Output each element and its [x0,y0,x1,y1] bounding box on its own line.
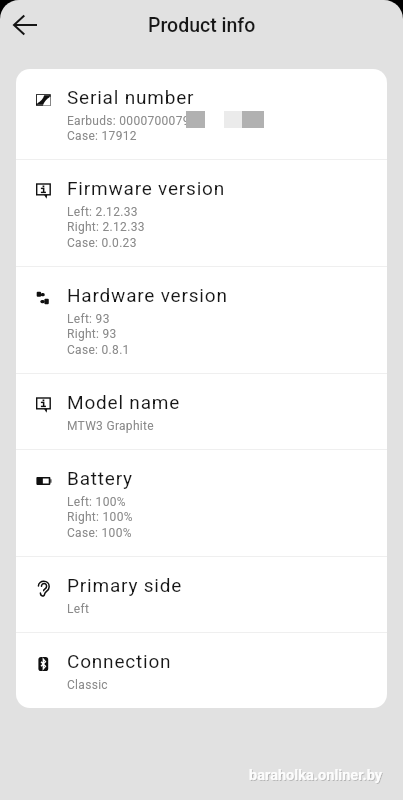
button[interactable]: Primary side [16,557,387,632]
button[interactable]: Model name [16,374,387,449]
staticText: Primary side [67,574,183,596]
button[interactable]: Back [4,3,48,47]
button[interactable]: Battery [16,450,387,556]
staticText: Classic [67,678,108,692]
button[interactable]: Firmware version [16,160,387,266]
staticText: Serial number [67,86,195,108]
staticText: Earbuds: 0000700079 Case: 17912 [67,114,190,143]
staticText: Left: 2.12.33 Right: 2.12.33 Case: 0.0.2… [67,205,145,250]
staticText: Hardware version [67,284,228,306]
staticText: Left [67,602,90,616]
staticText: baraholka.onliner.by [250,767,384,784]
staticText: Firmware version [67,177,226,199]
staticText: Connection [67,650,172,672]
staticText: MTW3 Graphite [67,419,154,433]
staticText: baraholka.onliner.by [249,766,383,783]
button[interactable]: Serial number [16,69,387,159]
button[interactable]: Connection [16,633,387,708]
button[interactable]: Hardware version [16,267,387,373]
staticText: Model name [67,391,181,413]
staticText: Product info [148,14,256,37]
staticText: Left: 93 Right: 93 Case: 0.8.1 [67,312,130,357]
staticText: Left: 100% Right: 100% Case: 100% [67,495,133,540]
staticText: Battery [67,467,133,489]
